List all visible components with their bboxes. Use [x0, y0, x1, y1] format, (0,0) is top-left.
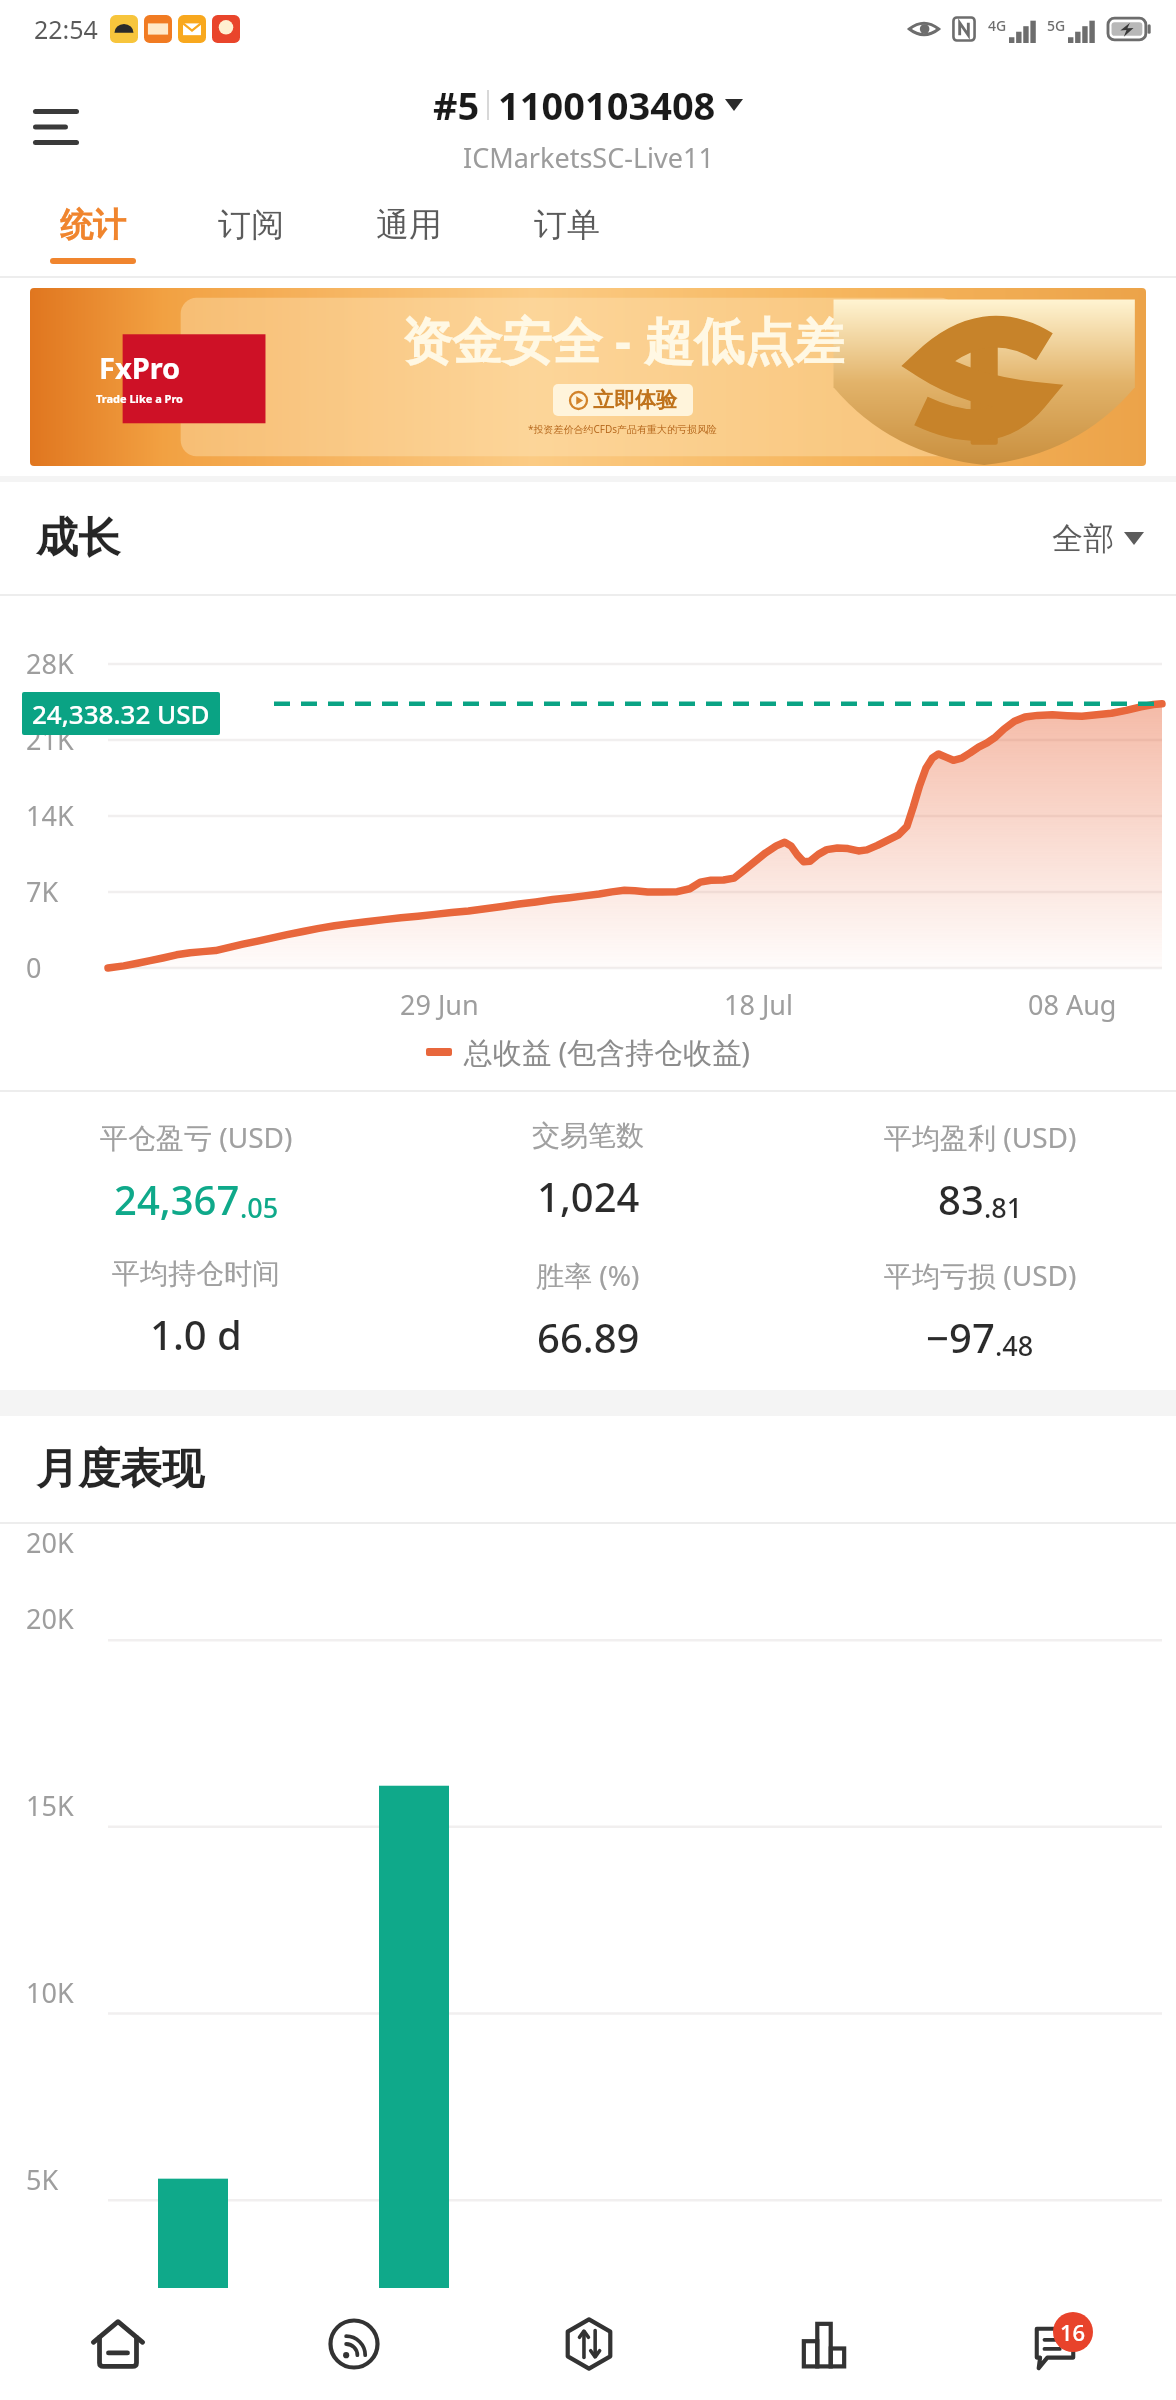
button[interactable]: 通用: [330, 196, 488, 278]
staticText: 21K: [26, 721, 74, 758]
staticText: 15K: [26, 1787, 74, 1824]
staticText: ICMarketsSC-Live11: [463, 139, 714, 176]
staticText: 18 Jul: [724, 986, 793, 1023]
staticText: 订单: [534, 204, 600, 246]
staticText: 通用: [376, 204, 442, 246]
button[interactable]: Trade: [471, 2288, 706, 2400]
staticText: 1100103408: [498, 79, 716, 131]
staticText: 24,338.32 USD: [32, 696, 210, 731]
staticText: 1.0 d: [150, 1307, 242, 1361]
staticText: .48: [995, 1327, 1034, 1364]
staticText: 交易笔数: [532, 1118, 644, 1153]
button[interactable]: 平均盈利 (USD): [784, 1118, 1176, 1226]
button[interactable]: Signals: [236, 2288, 471, 2400]
button[interactable]: 平均持仓时间: [0, 1256, 392, 1361]
staticText: 平均盈利 (USD): [884, 1118, 1077, 1156]
staticText: −97: [926, 1310, 995, 1364]
staticText: 29 Jun: [400, 986, 479, 1023]
staticText: 83: [938, 1172, 984, 1226]
staticText: 20K: [26, 1600, 74, 1637]
staticText: 订阅: [218, 204, 284, 246]
button[interactable]: Statistics: [706, 2288, 941, 2400]
staticText: 平均亏损 (USD): [884, 1256, 1077, 1294]
button[interactable]: Home: [0, 2288, 236, 2400]
button[interactable]: 订单: [488, 196, 646, 278]
staticText: 立即体验: [593, 387, 677, 413]
button[interactable]: FxPro advertisement: [30, 288, 1146, 466]
staticText: 16: [1060, 2317, 1086, 2347]
staticText: 月度表现: [36, 1443, 204, 1496]
staticText: 22:54: [34, 12, 98, 46]
button[interactable]: #5: [425, 79, 751, 176]
staticText: 全部: [1052, 519, 1114, 558]
staticText: 0: [26, 949, 42, 986]
button[interactable]: 交易笔数: [392, 1118, 784, 1223]
button[interactable]: 统计: [14, 196, 172, 278]
staticText: #5: [433, 79, 480, 131]
staticText: 胜率 (%): [536, 1256, 640, 1294]
button[interactable]: 立即体验: [569, 387, 677, 413]
button[interactable]: 订阅: [172, 196, 330, 278]
staticText: 1,024: [537, 1169, 640, 1223]
staticText: 20K: [26, 1524, 74, 1561]
staticText: Trade Like a Pro: [96, 391, 183, 406]
staticText: 10K: [26, 1974, 74, 2011]
staticText: 08 Aug: [1028, 986, 1117, 1023]
staticText: FxPro: [99, 348, 181, 387]
staticText: 28K: [26, 645, 74, 682]
staticText: 14K: [26, 797, 74, 834]
staticText: .05: [240, 1189, 279, 1226]
other: Eye care: [908, 17, 940, 41]
button[interactable]: Menu: [16, 87, 96, 167]
staticText: 4G: [988, 16, 1007, 35]
staticText: 24,367: [114, 1172, 240, 1226]
button[interactable]: 平仓盈亏 (USD): [0, 1118, 392, 1226]
staticText: 平均持仓时间: [112, 1256, 280, 1291]
other: Battery charging: [1108, 16, 1152, 42]
staticText: 总收益 (包含持仓收益): [464, 1032, 750, 1072]
staticText: 5G: [1047, 16, 1066, 35]
button[interactable]: Messages: [941, 2288, 1176, 2400]
button[interactable]: 全部: [1044, 509, 1152, 568]
staticText: 统计: [60, 204, 126, 246]
staticText: *投资差价合约CFDs产品有重大的亏损风险: [528, 422, 718, 436]
other: NFC: [952, 16, 976, 42]
staticText: 资金安全 - 超低点差: [402, 306, 844, 374]
staticText: 成长: [36, 512, 120, 565]
staticText: 平仓盈亏 (USD): [100, 1118, 293, 1156]
staticText: .81: [984, 1189, 1023, 1226]
staticText: 66.89: [537, 1310, 640, 1364]
staticText: 7K: [26, 873, 59, 910]
staticText: 5K: [26, 2161, 59, 2198]
button[interactable]: 胜率 (%): [392, 1256, 784, 1364]
button[interactable]: 平均亏损 (USD): [784, 1256, 1176, 1364]
